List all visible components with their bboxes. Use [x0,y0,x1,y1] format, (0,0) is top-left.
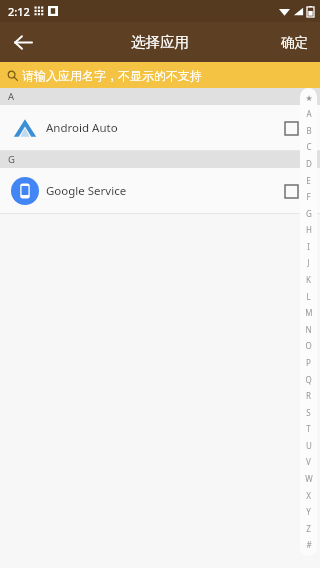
button[interactable]: Android Auto [0,105,320,150]
staticText: D [306,158,312,169]
staticText: L [306,291,311,302]
staticText: Q [305,374,312,385]
staticText: E [306,175,311,186]
staticText: 选择应用 [131,33,189,51]
button[interactable]: Select Android Auto [276,113,306,143]
staticText: T [306,423,311,434]
staticText: ★ [305,94,313,103]
staticText: W [305,473,313,484]
button[interactable]: Select Google Service [276,176,306,206]
staticText: Y [306,506,311,517]
button[interactable]: Google Service [0,168,320,213]
staticText: G [306,208,312,219]
staticText: I [307,241,310,252]
staticText: Z [306,523,311,534]
staticText: 请输入应用名字，不显示的不支持 [22,68,202,83]
staticText: H [306,224,312,235]
staticText: X [306,490,311,501]
staticText: G [8,153,15,166]
staticText: U [306,440,312,451]
staticText: Google Service [46,183,127,199]
staticText: Android Auto [46,120,118,136]
staticText: 确定 [281,34,308,51]
staticText: # [306,539,312,550]
staticText: C [306,141,312,152]
staticText: A [306,108,312,119]
staticText: S [306,407,311,418]
staticText: O [305,340,312,351]
button[interactable]: Alphabet index [300,88,317,556]
staticText: A [8,90,15,103]
staticText: B [306,125,312,136]
staticText: P [306,357,311,368]
button[interactable]: 确定 [269,22,320,62]
staticText: M [305,307,313,318]
staticText: K [306,274,311,285]
staticText: N [305,324,312,335]
button[interactable]: 请输入应用名字，不显示的不支持 [0,62,320,88]
button[interactable]: Back [6,25,40,59]
staticText: V [306,456,311,467]
staticText: F [306,191,311,202]
staticText: 2:12 [8,4,30,19]
staticText: J [307,257,310,268]
staticText: R [306,390,311,401]
